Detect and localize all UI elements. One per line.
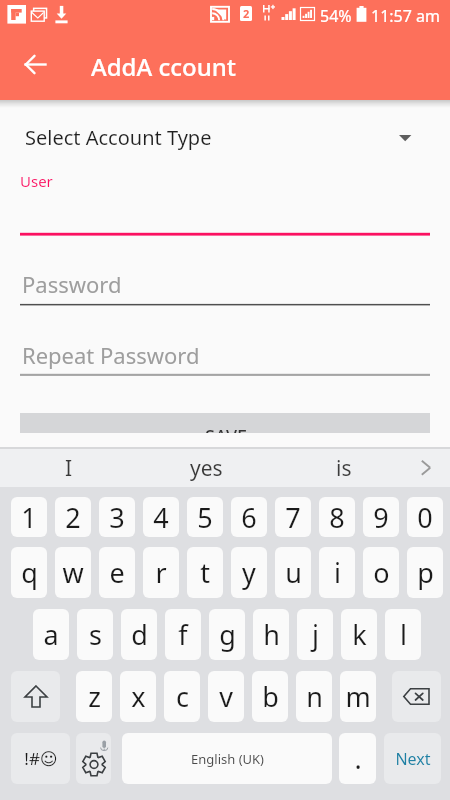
button[interactable]: b [252, 671, 288, 722]
button[interactable]: q [11, 547, 47, 598]
button[interactable]: h [253, 609, 289, 660]
button[interactable]: s [77, 609, 113, 660]
staticText: f [178, 616, 188, 653]
staticText: !#☺ [24, 747, 58, 770]
button[interactable]: 1 [11, 497, 47, 537]
staticText: m [345, 678, 371, 715]
staticText: b [262, 678, 279, 715]
button[interactable]: y [231, 547, 267, 598]
button[interactable]: o [363, 547, 399, 598]
staticText: v [219, 678, 233, 715]
button[interactable]: Settings [76, 733, 111, 784]
staticText: p [417, 554, 434, 591]
button[interactable]: p [407, 547, 443, 598]
button[interactable]: a [33, 609, 69, 660]
button[interactable]: 2 [55, 497, 91, 537]
staticText: is [336, 454, 352, 483]
button[interactable]: w [55, 547, 91, 598]
button[interactable]: u [275, 547, 311, 598]
button[interactable]: yes [137, 449, 275, 487]
staticText: . [354, 740, 362, 777]
button[interactable]: Next [384, 733, 441, 784]
staticText: 54% [320, 5, 352, 27]
button[interactable]: !#☺ [11, 733, 70, 784]
staticText: 2 [65, 499, 81, 536]
button[interactable]: x [120, 671, 156, 722]
staticText: SAVE [205, 424, 248, 433]
button[interactable]: 4 [143, 497, 179, 537]
staticText: h [263, 616, 280, 653]
button[interactable]: k [341, 609, 377, 660]
staticText: 1 [21, 499, 37, 536]
button[interactable]: 6 [231, 497, 267, 537]
staticText: z [88, 678, 101, 715]
button[interactable]: j [297, 609, 333, 660]
button[interactable]: Shift [11, 671, 60, 722]
staticText: 3 [109, 499, 125, 536]
staticText: n [306, 678, 323, 715]
button[interactable]: 3 [99, 497, 135, 537]
button[interactable]: v [208, 671, 244, 722]
staticText: 11:57 am [371, 5, 440, 27]
button[interactable]: SAVE [20, 413, 430, 433]
staticText: d [131, 616, 148, 653]
staticText: g [219, 616, 236, 653]
staticText: r [155, 554, 167, 591]
staticText: j [312, 616, 319, 653]
button[interactable]: 7 [275, 497, 311, 537]
staticText: a [43, 616, 59, 653]
button[interactable]: 8 [319, 497, 355, 537]
staticText: 9 [373, 499, 389, 536]
staticText: i [334, 554, 341, 591]
button[interactable]: z [76, 671, 112, 722]
staticText: User [20, 171, 53, 191]
button[interactable]: i [319, 547, 355, 598]
staticText: o [373, 554, 390, 591]
button[interactable]: 0 [407, 497, 443, 537]
button[interactable]: I [0, 449, 137, 487]
button[interactable]: Select Account Type [0, 114, 450, 160]
button[interactable]: Backspace [392, 671, 441, 722]
staticText: AddA ccount [91, 50, 236, 83]
staticText: c [176, 678, 189, 715]
staticText: 8 [329, 499, 345, 536]
button[interactable]: c [164, 671, 200, 722]
staticText: 2 [243, 6, 250, 21]
button[interactable]: is [275, 449, 413, 487]
button[interactable]: n [296, 671, 332, 722]
staticText: 7 [285, 499, 301, 536]
staticText: yes [190, 454, 223, 483]
staticText: 5 [197, 499, 213, 536]
button[interactable]: t [187, 547, 223, 598]
button[interactable]: m [340, 671, 376, 722]
staticText: 4 [153, 499, 169, 536]
button[interactable]: e [99, 547, 135, 598]
button[interactable]: English (UK) [122, 733, 332, 784]
button[interactable]: Back [13, 42, 57, 86]
staticText: k [352, 616, 367, 653]
staticText: I [65, 454, 73, 483]
button[interactable]: 5 [187, 497, 223, 537]
staticText: q [21, 554, 38, 591]
staticText: w [62, 554, 84, 591]
staticText: Next [395, 748, 431, 770]
staticText: Repeat Password [22, 340, 200, 370]
button[interactable]: . [339, 733, 376, 784]
staticText: 0 [417, 499, 433, 536]
staticText: u [285, 554, 302, 591]
staticText: Select Account Type [25, 124, 212, 151]
staticText: Password [22, 269, 122, 299]
staticText: English (UK) [191, 750, 264, 768]
staticText: l [400, 616, 407, 653]
staticText: s [89, 616, 102, 653]
staticText: 6 [241, 499, 257, 536]
staticText: x [131, 678, 146, 715]
button[interactable]: r [143, 547, 179, 598]
button[interactable]: More suggestions [413, 449, 450, 487]
staticText: e [109, 554, 125, 591]
button[interactable]: f [165, 609, 201, 660]
button[interactable]: d [121, 609, 157, 660]
button[interactable]: g [209, 609, 245, 660]
button[interactable]: 9 [363, 497, 399, 537]
button[interactable]: l [385, 609, 421, 660]
